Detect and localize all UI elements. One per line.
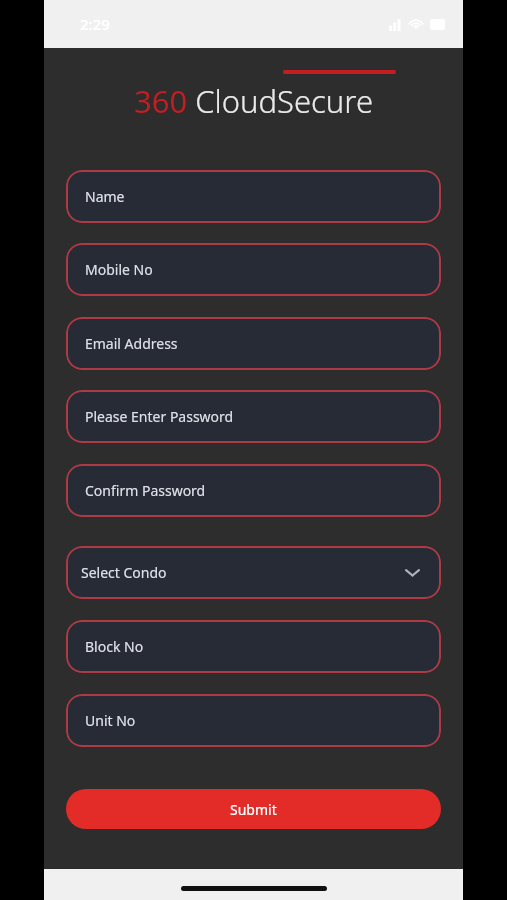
staticText: Please Enter Password — [85, 407, 234, 426]
button[interactable]: Block No — [66, 620, 441, 673]
button[interactable]: Unit No — [66, 694, 441, 747]
staticText: Confirm Password — [85, 481, 206, 500]
button[interactable]: Mobile No — [66, 243, 441, 296]
button[interactable]: Submit — [66, 789, 441, 829]
staticText: Mobile No — [85, 260, 153, 279]
button[interactable]: Confirm Password — [66, 464, 441, 517]
staticText: Unit No — [85, 711, 136, 730]
button[interactable]: Please Enter Password — [66, 390, 441, 443]
staticText: Submit — [230, 800, 277, 819]
button[interactable]: Select Condo — [66, 546, 441, 599]
button[interactable]: Name — [66, 170, 441, 223]
staticText: Email Address — [85, 334, 178, 353]
button[interactable]: Email Address — [66, 317, 441, 370]
staticText: Name — [85, 187, 125, 206]
staticText: Select Condo — [81, 563, 167, 582]
staticText: Block No — [85, 637, 144, 656]
staticText: 2:29 — [80, 14, 110, 34]
staticText: 360 CloudSecure — [134, 80, 374, 122]
